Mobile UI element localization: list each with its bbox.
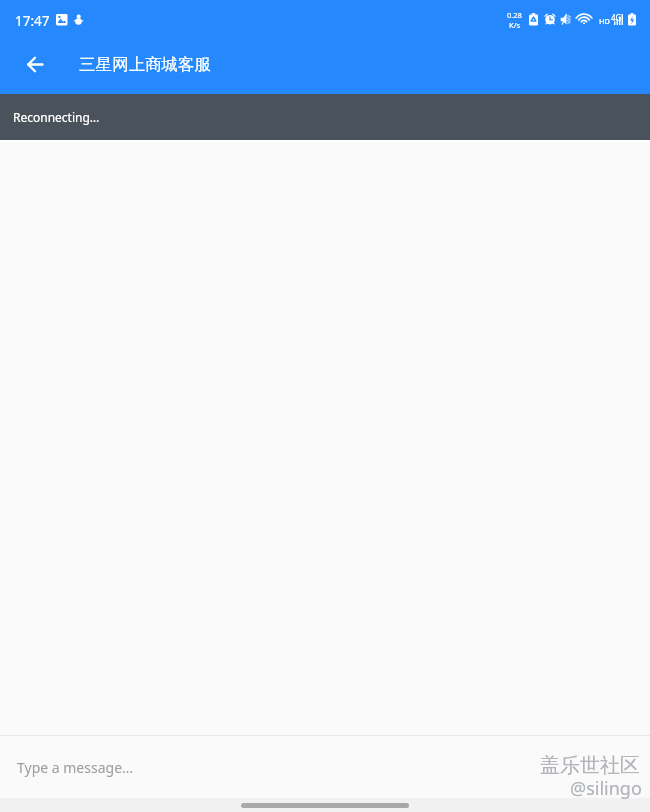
- button[interactable]: Type a message: [0, 736, 650, 798]
- staticText: 17:47: [15, 12, 50, 30]
- staticText: 三星网上商城客服: [79, 54, 211, 75]
- staticText: K/s: [509, 20, 521, 30]
- staticText: HD: [599, 16, 611, 26]
- staticText: @silingo: [570, 776, 642, 801]
- staticText: 0.28: [507, 10, 522, 20]
- staticText: 4G: [611, 12, 622, 23]
- staticText: Type a message…: [17, 758, 134, 777]
- button[interactable]: Back: [0, 40, 70, 94]
- staticText: 盖乐世社区: [540, 753, 640, 778]
- staticText: Reconnecting…: [13, 109, 100, 125]
